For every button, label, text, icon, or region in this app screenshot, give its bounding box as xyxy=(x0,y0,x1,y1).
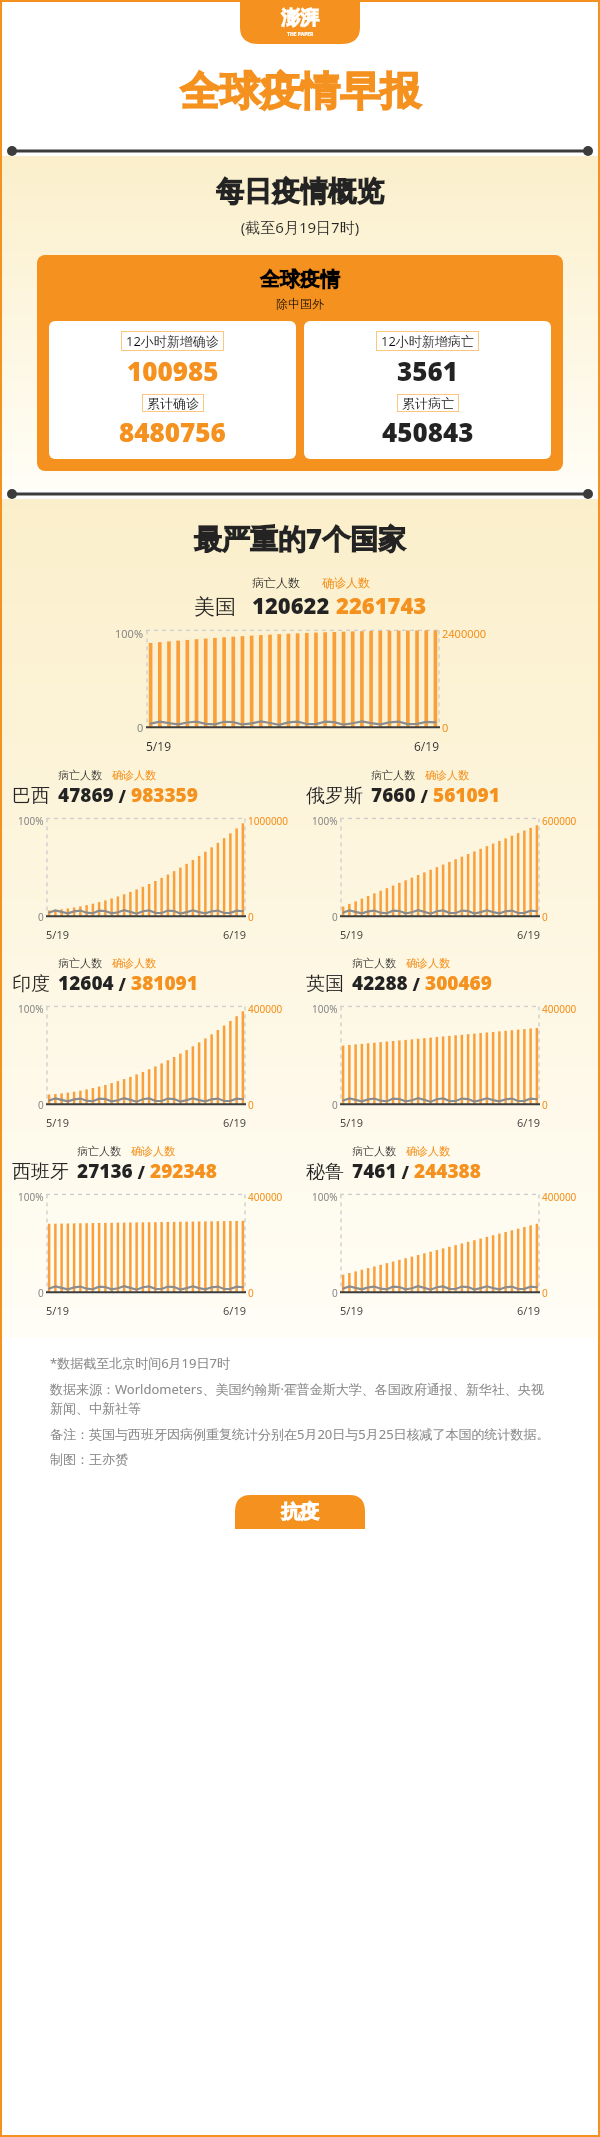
staticText: 6/19 xyxy=(223,927,246,942)
staticText: 6/19 xyxy=(223,1303,246,1318)
staticText: 400000 xyxy=(248,1002,283,1016)
button[interactable]: 12小时新增病亡 xyxy=(304,321,551,459)
staticText: 2261743 xyxy=(336,590,427,620)
staticText: 7461 xyxy=(352,1158,397,1184)
staticText: 5/19 xyxy=(46,1303,69,1318)
staticText: 600000 xyxy=(542,814,577,828)
button[interactable]: 俄罗斯 xyxy=(300,768,594,942)
staticText: 400000 xyxy=(542,1190,577,1204)
staticText: 病亡人数 xyxy=(77,1144,121,1158)
staticText: 0 xyxy=(542,1286,548,1300)
staticText: 8480756 xyxy=(119,414,226,449)
button[interactable]: 12小时新增确诊 xyxy=(49,321,296,459)
staticText: 100% xyxy=(312,1002,338,1016)
staticText: 确诊人数 xyxy=(112,768,156,782)
staticText: 5/19 xyxy=(340,927,363,942)
staticText: 数据来源：Worldometers、美国约翰斯·霍普金斯大学、各国政府通报、新华… xyxy=(50,1380,550,1417)
staticText: 确诊人数 xyxy=(425,768,469,782)
staticText: 印度 xyxy=(12,972,50,996)
staticText: 100% xyxy=(115,626,144,641)
staticText: 抗疫 xyxy=(281,1500,319,1524)
button[interactable]: 西班牙 xyxy=(6,1144,300,1318)
staticText: 0 xyxy=(38,1098,44,1112)
staticText: 澎湃 xyxy=(281,6,319,30)
staticText: 27136 xyxy=(77,1158,133,1184)
staticText: 秘鲁 xyxy=(306,1160,344,1184)
staticText: 2400000 xyxy=(442,626,487,641)
staticText: / xyxy=(114,973,131,996)
staticText: 1000000 xyxy=(248,814,289,828)
staticText: 美国 xyxy=(194,594,236,620)
staticText: 7660 xyxy=(371,782,416,808)
staticText: 0 xyxy=(38,910,44,924)
staticText: 3561 xyxy=(397,353,458,388)
staticText: 12小时新增确诊 xyxy=(126,332,219,350)
staticText: THE PAPER xyxy=(287,31,314,38)
staticText: 6/19 xyxy=(517,1303,540,1318)
staticText: 0 xyxy=(332,1098,338,1112)
staticText: 100985 xyxy=(127,353,219,388)
staticText: 292348 xyxy=(150,1158,217,1184)
staticText: 病亡人数 xyxy=(352,1144,396,1158)
staticText: 100% xyxy=(18,1002,44,1016)
button[interactable]: 美国 xyxy=(0,575,600,754)
staticText: 5/19 xyxy=(340,1303,363,1318)
staticText: 制图：王亦赟 xyxy=(50,1451,128,1467)
staticText: 5/19 xyxy=(46,1115,69,1130)
staticText: / xyxy=(114,785,131,808)
staticText: 全球疫情 xyxy=(260,267,340,292)
staticText: 除中国外 xyxy=(276,296,324,311)
staticText: 0 xyxy=(442,720,449,735)
staticText: 0 xyxy=(248,1098,254,1112)
staticText: 巴西 xyxy=(12,784,50,808)
staticText: 病亡人数 xyxy=(252,575,300,590)
staticText: 每日疫情概览 xyxy=(0,174,600,209)
button[interactable]: 巴西 xyxy=(6,768,300,942)
staticText: 0 xyxy=(248,910,254,924)
staticText: 病亡人数 xyxy=(58,956,102,970)
staticText: 0 xyxy=(38,1286,44,1300)
staticText: 备注：英国与西班牙因病例重复统计分别在5月20日与5月25日核减了本国的统计数据… xyxy=(50,1425,550,1443)
staticText: 0 xyxy=(137,720,144,735)
staticText: 0 xyxy=(332,1286,338,1300)
staticText: 西班牙 xyxy=(12,1160,69,1184)
staticText: / xyxy=(416,785,433,808)
staticText: 6/19 xyxy=(414,738,440,754)
staticText: / xyxy=(133,1161,150,1184)
staticText: 47869 xyxy=(58,782,114,808)
staticText: 确诊人数 xyxy=(322,575,370,590)
button[interactable]: 抗疫 xyxy=(235,1495,365,1529)
staticText: 12小时新增病亡 xyxy=(381,332,474,350)
staticText: 5/19 xyxy=(146,738,172,754)
staticText: 561091 xyxy=(433,782,500,808)
staticText: 确诊人数 xyxy=(406,956,450,970)
staticText: 983359 xyxy=(131,782,198,808)
staticText: 英国 xyxy=(306,972,344,996)
staticText: 病亡人数 xyxy=(58,768,102,782)
staticText: 病亡人数 xyxy=(352,956,396,970)
staticText: (截至6月19日7时) xyxy=(0,217,600,237)
button[interactable]: 英国 xyxy=(300,956,594,1130)
staticText: 俄罗斯 xyxy=(306,784,363,808)
staticText: 12604 xyxy=(58,970,114,996)
staticText: 400000 xyxy=(542,1002,577,1016)
staticText: 0 xyxy=(542,1098,548,1112)
staticText: 381091 xyxy=(131,970,198,996)
staticText: 累计病亡 xyxy=(402,395,454,411)
staticText: 450843 xyxy=(382,414,474,449)
staticText: 5/19 xyxy=(46,927,69,942)
staticText: 0 xyxy=(542,910,548,924)
staticText: 0 xyxy=(248,1286,254,1300)
button[interactable]: 印度 xyxy=(6,956,300,1130)
staticText: 病亡人数 xyxy=(371,768,415,782)
staticText: 6/19 xyxy=(517,1115,540,1130)
staticText: 100% xyxy=(312,814,338,828)
button[interactable]: 秘鲁 xyxy=(300,1144,594,1318)
staticText: 确诊人数 xyxy=(131,1144,175,1158)
staticText: 100% xyxy=(18,814,44,828)
staticText: 244388 xyxy=(414,1158,481,1184)
button[interactable]: 全球疫情 xyxy=(37,255,563,471)
staticText: 5/19 xyxy=(340,1115,363,1130)
staticText: 100% xyxy=(312,1190,338,1204)
staticText: / xyxy=(397,1161,414,1184)
